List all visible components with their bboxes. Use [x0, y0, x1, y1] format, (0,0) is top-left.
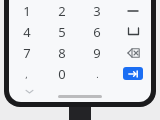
staticText: ,: [25, 68, 28, 80]
staticText: 4: [23, 23, 31, 41]
button[interactable]: 7: [9, 42, 44, 63]
staticText: 9: [93, 44, 101, 62]
button[interactable]: 5: [44, 21, 79, 42]
button[interactable]: 4: [9, 21, 44, 42]
button[interactable]: Dash: [115, 0, 151, 21]
staticText: 5: [58, 23, 66, 41]
button[interactable]: 6: [79, 21, 115, 42]
button[interactable]: 2: [44, 0, 79, 21]
button[interactable]: 8: [44, 42, 79, 63]
button[interactable]: 3: [79, 0, 115, 21]
button[interactable]: ,: [9, 63, 44, 84]
staticText: 1: [23, 2, 31, 20]
staticText: .: [96, 68, 99, 80]
button[interactable]: Space: [115, 21, 151, 42]
button[interactable]: 0: [44, 63, 79, 84]
button[interactable]: 9: [79, 42, 115, 63]
staticText: 2: [58, 2, 66, 20]
staticText: 6: [93, 23, 101, 41]
button[interactable]: 1: [9, 0, 44, 21]
staticText: 3: [93, 2, 101, 20]
button[interactable]: Next field: [123, 67, 143, 80]
button[interactable]: Backspace: [115, 42, 151, 63]
staticText: 0: [58, 65, 66, 83]
staticText: 7: [23, 44, 31, 62]
button[interactable]: .: [79, 63, 115, 84]
staticText: 8: [58, 44, 66, 62]
button[interactable]: Hide keyboard: [23, 85, 35, 97]
